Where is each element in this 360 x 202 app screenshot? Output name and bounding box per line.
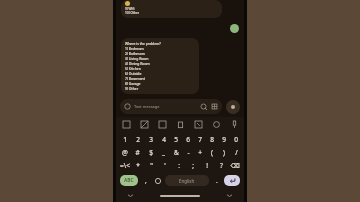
staticText: ) <box>223 148 225 157</box>
staticText: 5) Kitchen <box>125 66 141 71</box>
staticText: ABC <box>124 177 134 184</box>
button[interactable]: Settings <box>211 119 221 129</box>
staticText: 0 <box>234 135 238 144</box>
button[interactable]: 1 <box>118 133 131 146</box>
staticText: ! <box>206 161 208 170</box>
button[interactable]: Sticker <box>157 119 167 129</box>
button[interactable]: =\< <box>118 159 131 172</box>
staticText: 4) Dining Room <box>125 61 150 66</box>
button[interactable]: Keyboard <box>121 119 131 129</box>
staticText: & <box>174 148 179 157</box>
button[interactable]: # <box>131 146 144 159</box>
button[interactable]: ? <box>214 159 228 172</box>
button[interactable]: 9) Wifi <box>121 0 222 18</box>
button[interactable]: + <box>194 146 206 159</box>
staticText: @ <box>122 148 128 157</box>
staticText: 5 <box>174 135 178 144</box>
staticText: Where is the problem? <box>125 41 161 46</box>
staticText: * <box>136 161 140 170</box>
staticText: ( <box>211 148 213 157</box>
staticText: ? <box>220 161 223 170</box>
staticText: 2 <box>136 135 140 144</box>
button[interactable]: - <box>182 146 194 159</box>
button[interactable]: , <box>141 174 150 187</box>
staticText: 10) Other <box>125 11 140 15</box>
button[interactable]: * <box>131 159 144 172</box>
button[interactable]: ; <box>186 159 200 172</box>
button[interactable]: 4 <box>157 133 170 146</box>
staticText: English <box>179 178 195 184</box>
staticText: 8 <box>210 135 214 144</box>
button[interactable]: $ <box>144 146 157 159</box>
button[interactable]: ' <box>158 159 172 172</box>
button[interactable]: Voice <box>229 119 239 129</box>
staticText: 3) Living Room <box>125 56 149 61</box>
button[interactable]: Send <box>226 100 240 114</box>
button[interactable]: Back <box>126 191 135 200</box>
button[interactable] <box>230 24 239 33</box>
button[interactable]: 7 <box>194 133 206 146</box>
button[interactable]: ⌫ <box>228 159 242 172</box>
staticText: , <box>145 176 147 185</box>
button[interactable]: @ <box>118 146 131 159</box>
staticText: 4 <box>162 135 166 144</box>
staticText: 7 <box>198 135 202 144</box>
button[interactable]: ( <box>206 146 218 159</box>
button[interactable]: . <box>212 174 221 187</box>
staticText: 3 <box>149 135 153 144</box>
staticText: " <box>150 161 153 170</box>
staticText: 2) Bathroom <box>125 51 145 56</box>
staticText: . <box>216 176 218 185</box>
button[interactable]: Home <box>160 195 200 197</box>
button[interactable]: " <box>144 159 158 172</box>
button[interactable]: Enter <box>224 175 240 186</box>
button[interactable]: English <box>165 175 209 186</box>
staticText: 9) Other <box>125 86 139 91</box>
staticText: Text message <box>134 104 160 109</box>
staticText: ⌫ <box>230 162 240 170</box>
staticText: 9) Wifi <box>125 7 135 11</box>
staticText: 1 <box>123 135 127 144</box>
button[interactable]: GIF <box>139 119 149 129</box>
button[interactable]: ) <box>218 146 230 159</box>
staticText: =\< <box>120 161 130 170</box>
staticText: 9 <box>222 135 226 144</box>
button[interactable]: & <box>170 146 182 159</box>
staticText: ; <box>192 161 194 170</box>
staticText: 1) Bedroom <box>125 46 144 51</box>
staticText: / <box>235 148 238 157</box>
button[interactable]: 2 <box>131 133 144 146</box>
staticText: - <box>187 148 190 157</box>
staticText: 8) Garage <box>125 81 141 86</box>
button[interactable]: 6 <box>182 133 194 146</box>
staticText: 7) Basement <box>125 76 145 81</box>
staticText: $ <box>149 148 153 157</box>
staticText: # <box>135 148 140 157</box>
button[interactable]: Hide keyboard <box>225 191 234 200</box>
button[interactable]: 5 <box>170 133 182 146</box>
button[interactable]: ! <box>200 159 214 172</box>
button[interactable]: _ <box>157 146 170 159</box>
staticText: 6 <box>186 135 190 144</box>
staticText: _ <box>162 148 165 157</box>
button[interactable]: Text message <box>120 99 222 114</box>
staticText: : <box>178 161 180 170</box>
button[interactable]: 0 <box>230 133 242 146</box>
staticText: + <box>198 148 202 157</box>
button[interactable]: Translate <box>193 119 203 129</box>
button[interactable]: : <box>172 159 186 172</box>
button[interactable]: 8 <box>206 133 218 146</box>
button[interactable]: / <box>230 146 242 159</box>
button[interactable]: Clipboard <box>175 119 185 129</box>
staticText: ' <box>164 161 166 170</box>
button[interactable]: 9 <box>218 133 230 146</box>
button[interactable]: Emoji <box>153 174 162 187</box>
button[interactable]: 3 <box>144 133 157 146</box>
button[interactable]: Where is the problem? <box>121 38 199 94</box>
button[interactable]: ABC <box>120 175 138 186</box>
staticText: 6) Outside <box>125 71 142 76</box>
